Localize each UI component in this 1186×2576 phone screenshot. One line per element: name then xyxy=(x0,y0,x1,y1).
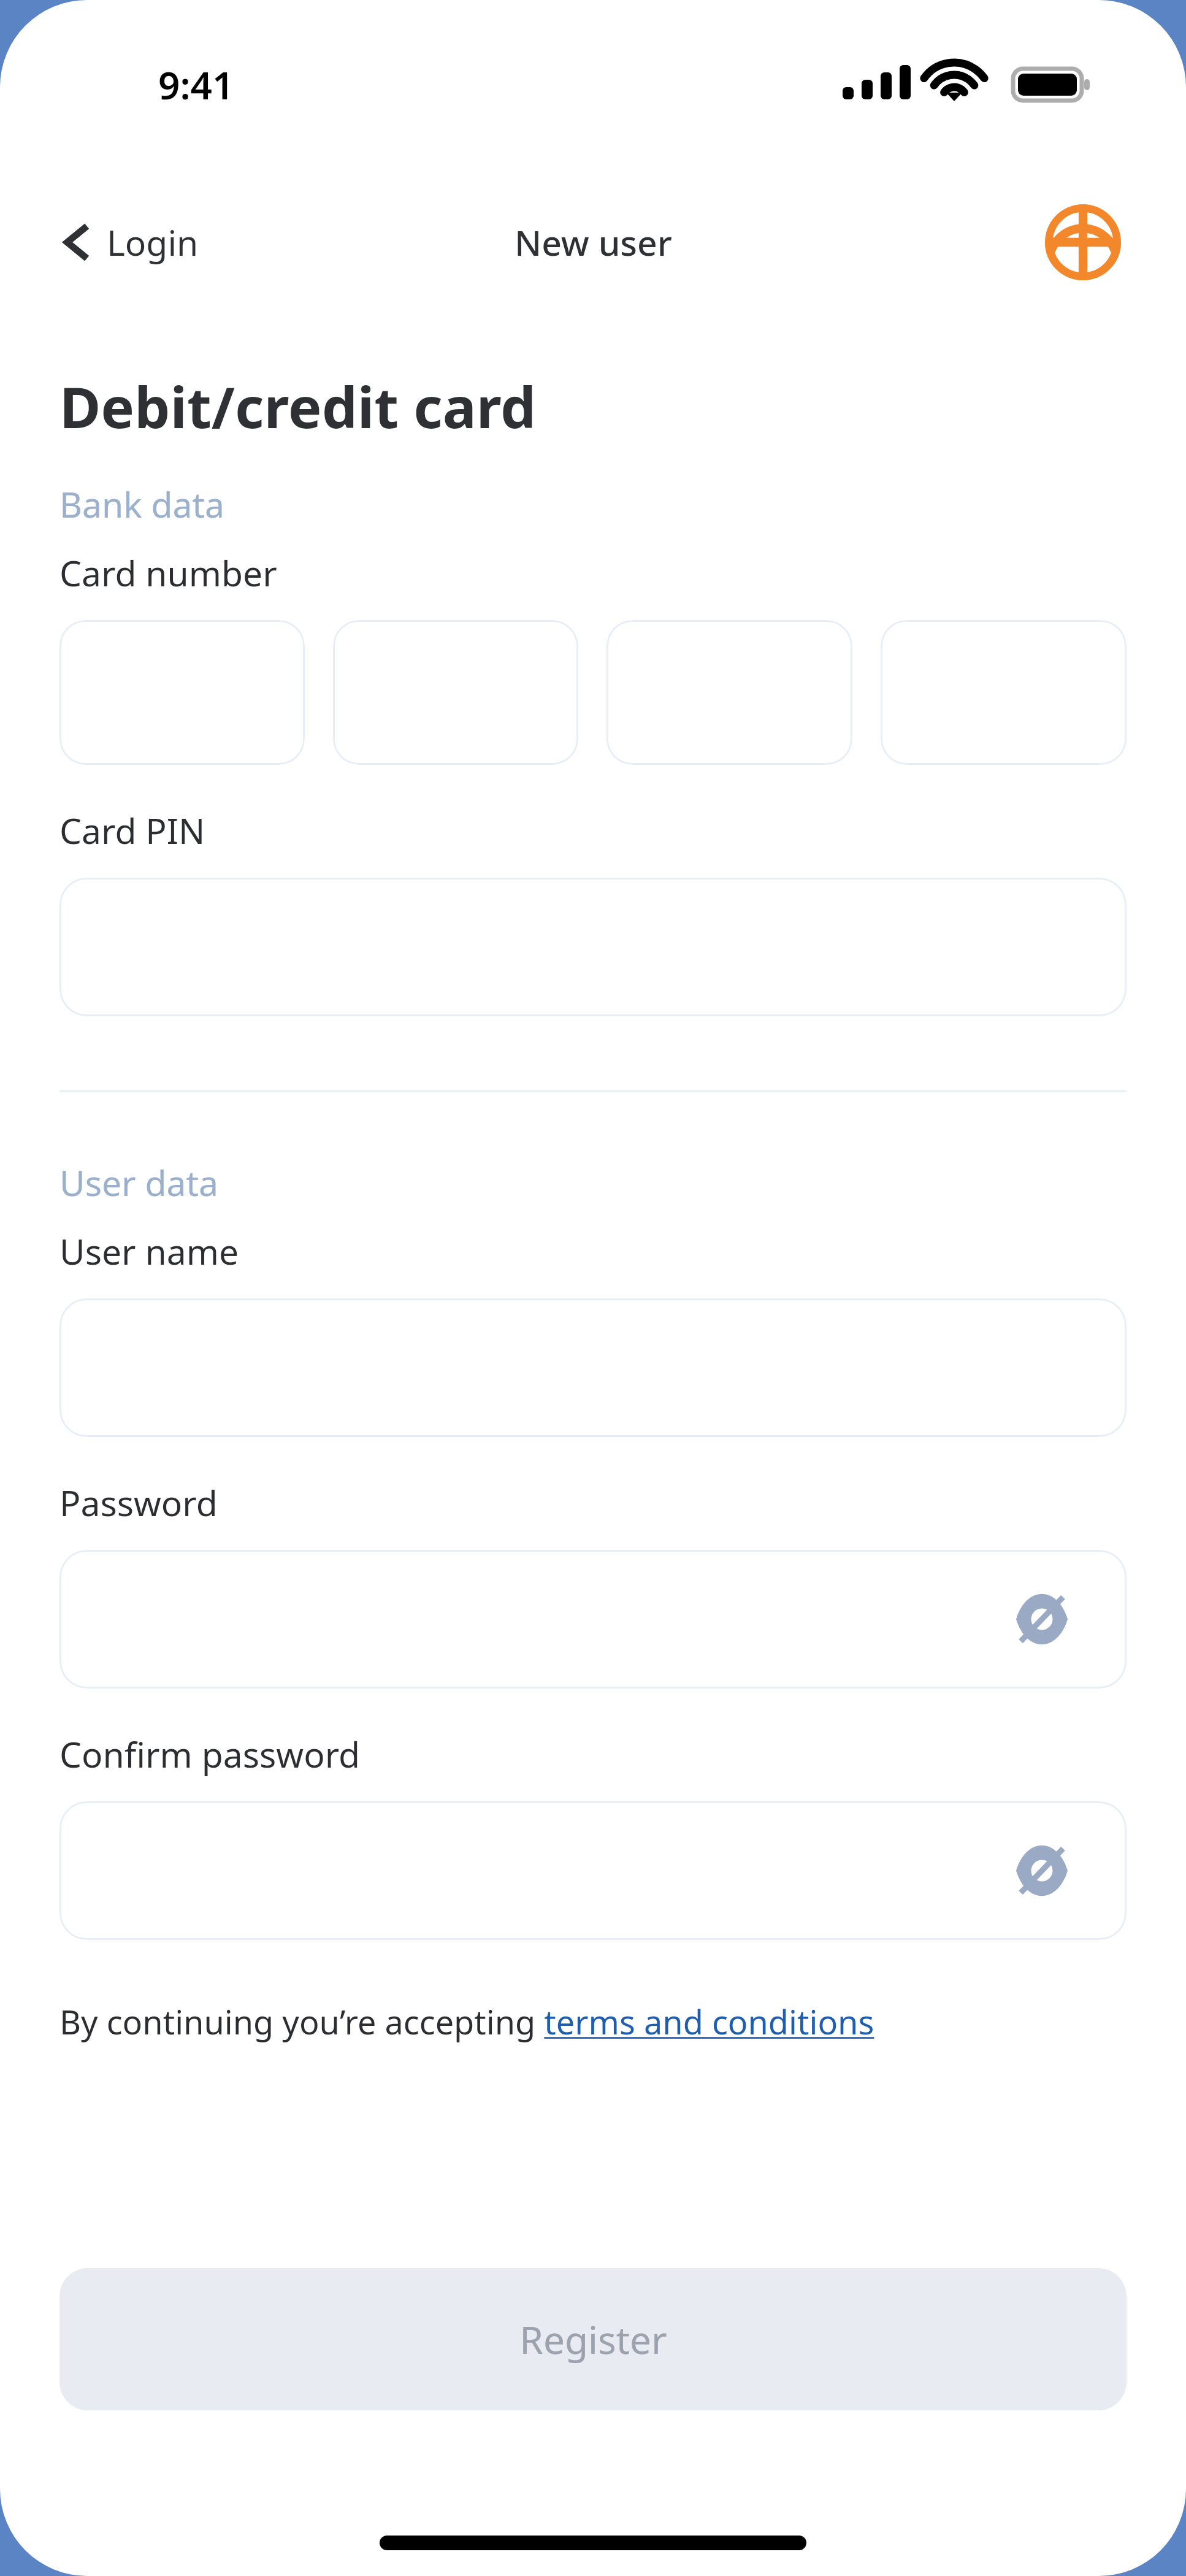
button[interactable]: Show password xyxy=(1011,1589,1073,1650)
button[interactable]: Show password xyxy=(1011,1840,1073,1901)
button[interactable]: Show password xyxy=(59,1550,1127,1689)
staticText: Password xyxy=(59,1479,218,1527)
staticText: Confirm password xyxy=(59,1730,361,1778)
button[interactable]: Register xyxy=(59,2268,1127,2410)
button[interactable] xyxy=(881,620,1127,765)
button[interactable]: Login xyxy=(53,212,207,272)
staticText: By continuing you’re accepting terms and… xyxy=(59,1999,874,2044)
staticText: Bank data xyxy=(59,480,225,528)
button[interactable] xyxy=(59,878,1127,1016)
staticText: Card number xyxy=(59,549,277,597)
button[interactable]: By continuing you’re accepting terms and… xyxy=(59,1999,1127,2044)
staticText: 9:41 xyxy=(158,59,234,110)
button[interactable] xyxy=(333,620,578,765)
staticText: Login xyxy=(107,218,199,266)
staticText: Debit/credit card xyxy=(59,368,537,445)
button[interactable] xyxy=(59,1298,1127,1437)
staticText: User name xyxy=(59,1227,239,1275)
button[interactable] xyxy=(59,620,305,765)
button[interactable]: Show password xyxy=(59,1801,1127,1940)
button[interactable] xyxy=(606,620,852,765)
staticText: Register xyxy=(519,2313,667,2365)
staticText: New user xyxy=(515,218,672,266)
button[interactable]: App logo xyxy=(1045,204,1121,280)
staticText: Card PIN xyxy=(59,807,205,854)
staticText: User data xyxy=(59,1159,219,1206)
